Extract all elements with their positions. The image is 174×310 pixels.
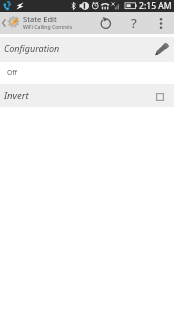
button[interactable]: Invert [0, 84, 174, 107]
staticText: WiFi Calling Controls [23, 24, 73, 31]
staticText: State Edit [23, 14, 57, 24]
button[interactable]: Off [0, 62, 174, 84]
staticText: ? [131, 14, 137, 32]
button[interactable]: Reset [95, 13, 117, 33]
button[interactable]: Navigate up [0, 12, 22, 34]
staticText: 2:15 AM [139, 0, 172, 12]
staticText: Invert [4, 89, 156, 102]
button[interactable]: Help [124, 13, 144, 33]
button[interactable]: Configuration [0, 37, 174, 62]
staticText: Configuration [4, 42, 155, 54]
button[interactable]: More options [151, 13, 171, 33]
staticText: Off [7, 68, 17, 77]
